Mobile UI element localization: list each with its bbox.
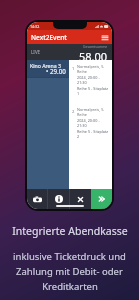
button[interactable]: Next	[91, 189, 112, 209]
staticText: Reihe 5 - Sitzplatz 1	[77, 86, 109, 96]
button[interactable]: Cancel	[70, 189, 91, 209]
staticText: LIVE	[31, 49, 41, 55]
button[interactable]: LIVE	[27, 44, 112, 60]
staticText: Integrierte Abendkasse	[12, 224, 128, 238]
staticText: 14:32	[30, 24, 40, 29]
staticText: Normalpreis, 5. Reihe	[77, 64, 109, 74]
staticText: • 29.00	[46, 67, 66, 75]
staticText: 1	[72, 66, 75, 72]
button[interactable]: 2	[69, 106, 112, 140]
staticText: Gesamtsumme	[83, 44, 108, 49]
staticText: inklusive Ticketdruck und	[13, 250, 126, 263]
staticText: 58.00	[79, 49, 108, 60]
button[interactable]: Camera	[27, 189, 47, 209]
staticText: 2024, 20:00 - 21:30	[77, 75, 109, 85]
staticText: Normalpreis, 5. Reihe	[77, 107, 109, 117]
button[interactable]: Kino Arena 3	[27, 60, 69, 77]
button[interactable]: Info	[48, 189, 69, 209]
staticText: Kreditkarten	[42, 280, 98, 293]
button[interactable]: 1	[69, 63, 112, 97]
button[interactable]: Menu	[100, 33, 109, 42]
staticText: Zahlung mit Debit- oder	[16, 265, 123, 278]
staticText: 2	[72, 109, 75, 115]
staticText: Reihe 5 - Sitzplatz 2	[77, 129, 109, 139]
staticText: 2024, 20:00 - 21:30	[77, 118, 109, 128]
staticText: Next2Event	[31, 33, 67, 42]
staticText: Kino Arena 3	[30, 62, 61, 69]
